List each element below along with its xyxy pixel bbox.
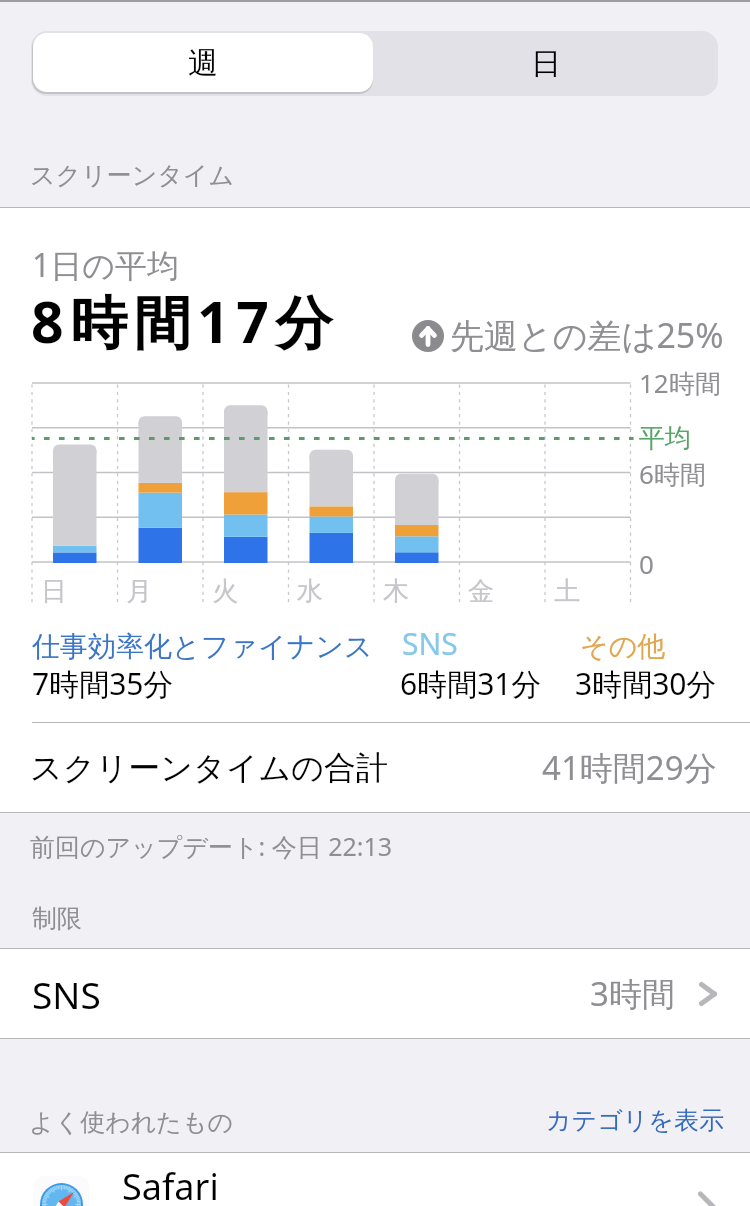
staticText: 1日の平均 [32, 243, 180, 287]
staticText: 水 [297, 575, 323, 608]
staticText: SNS [32, 969, 101, 1019]
button[interactable]: カテゴリを表示 [546, 1105, 724, 1136]
staticText: 平均 [639, 422, 691, 455]
staticText: SNS [402, 623, 458, 664]
staticText: Safari [122, 1162, 219, 1206]
button[interactable]: 日 [374, 31, 718, 96]
staticText: 0 [639, 546, 654, 581]
staticText: 土 [554, 575, 580, 608]
staticText: 木 [383, 575, 409, 608]
staticText: 6時間 [639, 456, 706, 492]
other: Increase 25 percent [412, 320, 444, 352]
staticText: 12時間 [639, 365, 721, 401]
staticText: 先週との差は25% [450, 312, 724, 358]
staticText: よく使われたもの [29, 1107, 234, 1138]
staticText: 6時間31分 [400, 663, 542, 704]
button[interactable]: 週 [33, 33, 373, 92]
staticText: 仕事効率化とファイナンス [32, 629, 373, 664]
staticText: 3時間 [590, 971, 675, 1016]
staticText: 日 [531, 45, 561, 83]
staticText: 火 [212, 575, 238, 608]
staticText: 日 [41, 575, 67, 608]
button[interactable]: スクリーンタイムの合計 [0, 723, 750, 812]
staticText: 月 [126, 575, 152, 608]
staticText: カテゴリを表示 [546, 1105, 724, 1136]
staticText: その他 [580, 629, 666, 664]
staticText: 41時間29分 [542, 745, 717, 790]
staticText: 8時間17分 [31, 282, 339, 360]
staticText: スクリーンタイム [30, 160, 235, 191]
staticText: スクリーンタイムの合計 [30, 748, 388, 788]
button[interactable]: SNS [0, 949, 750, 1038]
staticText: 金 [468, 575, 494, 608]
button[interactable]: Safari [0, 1153, 750, 1206]
staticText: 3時間30分 [575, 663, 717, 704]
staticText: 制限 [32, 903, 82, 934]
staticText: 7時間35分 [32, 663, 174, 704]
staticText: 前回のアップデート: 今日 22:13 [30, 829, 393, 863]
staticText: 週 [188, 44, 218, 82]
